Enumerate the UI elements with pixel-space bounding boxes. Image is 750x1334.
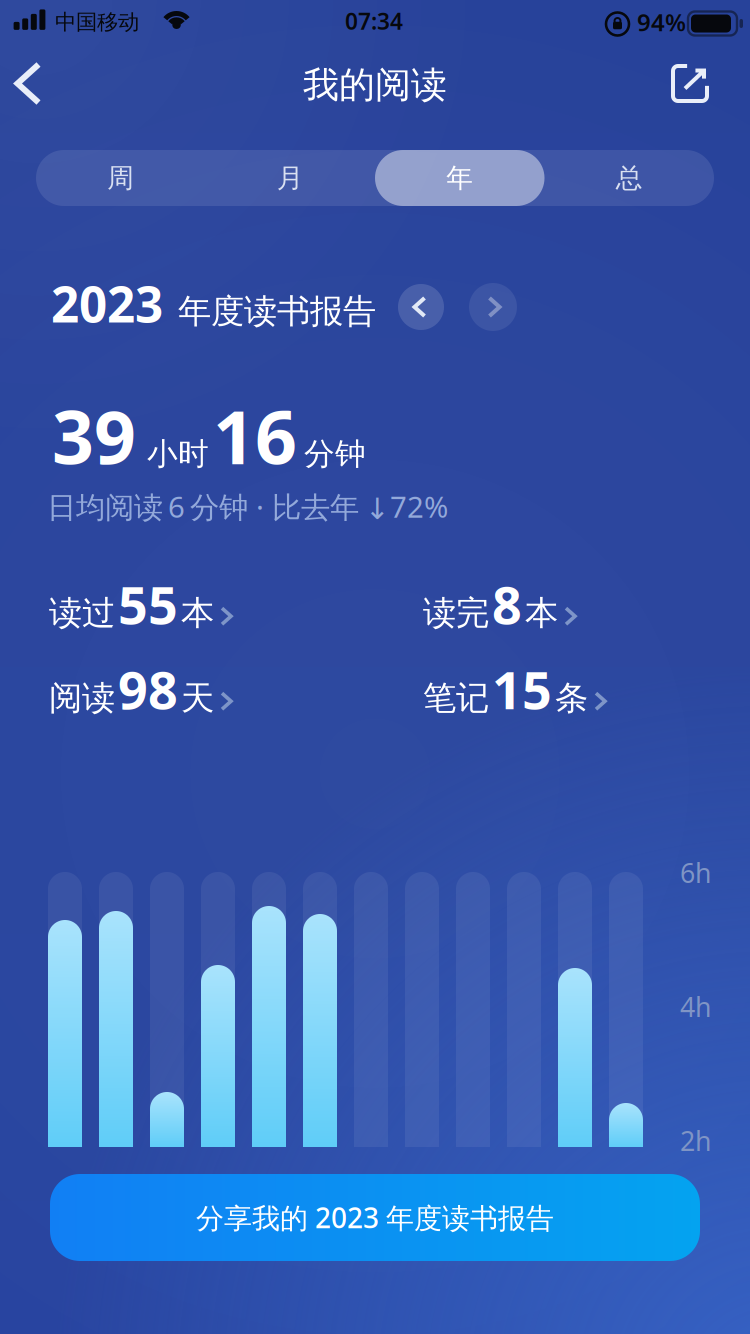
staticText: 读完 [423, 593, 489, 633]
staticText: 条 [555, 678, 588, 718]
staticText: 39 [52, 387, 136, 484]
button[interactable]: 总 [544, 150, 714, 206]
staticText: 年度读书报告 [178, 291, 376, 332]
button[interactable]: Next year [469, 283, 517, 331]
button[interactable]: Previous year [398, 284, 444, 330]
button[interactable]: 笔记 [423, 654, 605, 724]
staticText: 本 [181, 593, 214, 633]
staticText: 2023 [51, 270, 163, 336]
staticText: 总 [616, 162, 643, 194]
staticText: 月 [277, 162, 304, 194]
button[interactable]: Back [0, 55, 56, 111]
button[interactable]: 周 [36, 150, 205, 206]
staticText: 55 [118, 569, 178, 639]
staticText: 15 [492, 654, 552, 724]
button[interactable]: 年 [375, 150, 544, 206]
button[interactable]: Share [662, 55, 718, 111]
staticText: 07:34 [345, 6, 403, 36]
staticText: 阅读 [49, 678, 115, 718]
staticText: 16 [213, 387, 297, 484]
staticText: 小时 [147, 435, 209, 473]
button[interactable]: 月 [205, 150, 375, 206]
staticText: 98 [118, 654, 178, 724]
staticText: 4h [680, 989, 711, 1024]
staticText: 2h [680, 1123, 711, 1158]
staticText: 分享我的 2023 年度读书报告 [196, 1199, 554, 1236]
button[interactable]: 读完 [423, 569, 575, 639]
staticText: 6h [680, 855, 711, 890]
button[interactable]: 分享我的 2023 年度读书报告 [50, 1174, 700, 1261]
staticText: 日均阅读 6 分钟 · 比去年 ↓72% [47, 487, 448, 526]
button[interactable]: 阅读 [49, 654, 231, 724]
staticText: 年 [446, 162, 473, 194]
staticText: 94% [637, 6, 686, 38]
staticText: 天 [181, 678, 214, 718]
staticText: 我的阅读 [303, 63, 447, 107]
staticText: 8 [492, 569, 522, 639]
staticText: 中国移动 [55, 9, 139, 35]
staticText: 本 [525, 593, 558, 633]
staticText: 分钟 [304, 435, 366, 473]
staticText: 笔记 [423, 678, 489, 718]
staticText: 读过 [49, 593, 115, 633]
button[interactable]: 读过 [49, 569, 231, 639]
staticText: 周 [107, 162, 134, 194]
